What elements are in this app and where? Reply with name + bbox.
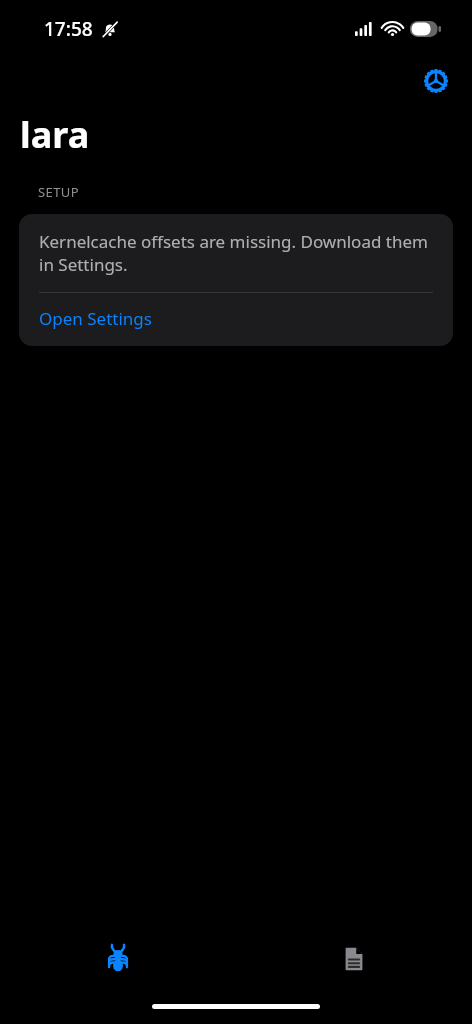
button[interactable]: Debug bbox=[0, 924, 236, 994]
button[interactable]: Settings bbox=[414, 59, 458, 103]
staticText: lara bbox=[20, 110, 90, 159]
staticText: Kernelcache offsets are missing. Downloa… bbox=[39, 230, 439, 276]
staticText: 17:58 bbox=[44, 16, 93, 42]
button[interactable]: Open Settings bbox=[19, 293, 453, 346]
staticText: SETUP bbox=[38, 183, 79, 201]
button[interactable]: Logs bbox=[236, 924, 472, 994]
staticText: Open Settings bbox=[39, 307, 152, 330]
